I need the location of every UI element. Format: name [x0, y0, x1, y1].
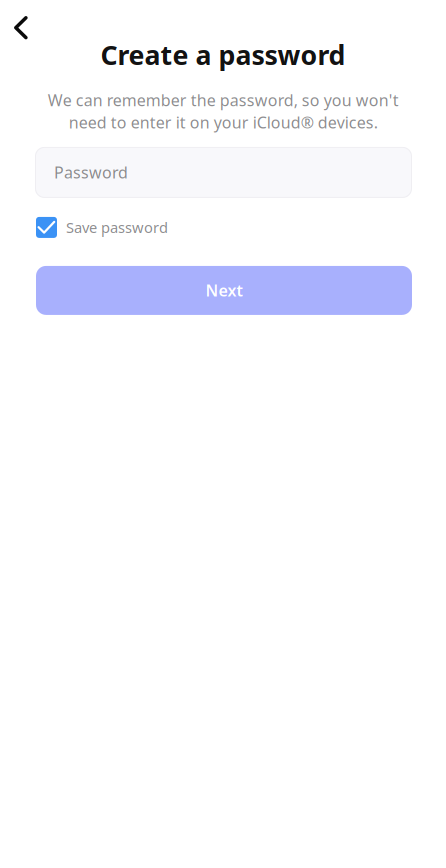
staticText: We can remember the password, so you won… [47, 89, 398, 133]
staticText: Create a password [100, 37, 345, 72]
button[interactable]: Next [36, 266, 412, 315]
button[interactable]: Save password [36, 213, 412, 242]
staticText: Save password [66, 218, 168, 237]
staticText: Next [205, 280, 242, 301]
staticText: Password [54, 162, 128, 183]
button[interactable]: Password [35, 147, 412, 198]
button[interactable]: Back [0, 0, 45, 51]
